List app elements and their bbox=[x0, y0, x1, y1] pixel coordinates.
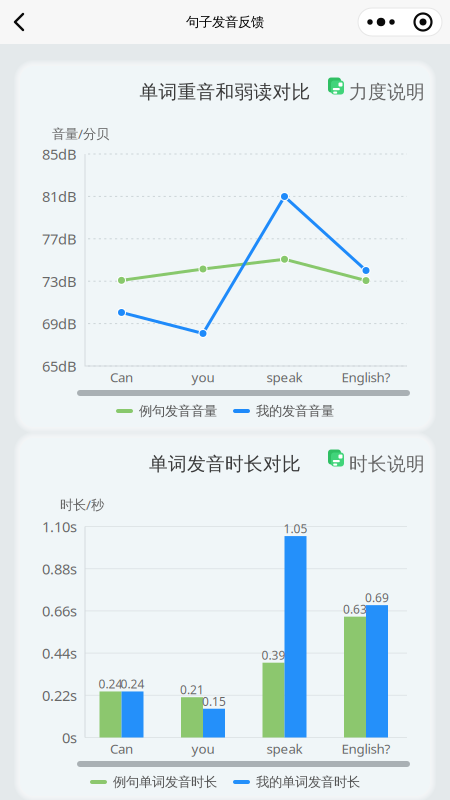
staticText: 音量/分贝 bbox=[52, 125, 109, 142]
staticText: you bbox=[191, 368, 214, 386]
staticText: 0.66s bbox=[42, 601, 77, 621]
staticText: 时长/秒 bbox=[60, 496, 104, 513]
staticText: 例句发音音量 bbox=[139, 403, 217, 419]
button[interactable]: More bbox=[358, 8, 404, 36]
staticText: speak bbox=[266, 368, 302, 386]
staticText: 0s bbox=[62, 728, 77, 747]
staticText: Can bbox=[110, 368, 133, 386]
staticText: 73dB bbox=[42, 271, 77, 291]
staticText: 0.24 bbox=[98, 676, 122, 692]
staticText: 例句单词发音时长 bbox=[113, 774, 217, 790]
staticText: 0.21 bbox=[180, 682, 204, 698]
staticText: 0.88s bbox=[42, 559, 77, 578]
staticText: 69dB bbox=[42, 314, 77, 333]
staticText: 0.24 bbox=[120, 676, 144, 692]
staticText: 单词重音和弱读对比 bbox=[139, 80, 310, 103]
staticText: 1.10s bbox=[42, 517, 77, 536]
button[interactable]: 力度说明 bbox=[328, 80, 425, 103]
staticText: 0.44s bbox=[42, 643, 77, 663]
button[interactable]: 时长说明 bbox=[328, 452, 425, 475]
button[interactable]: Back bbox=[6, 6, 38, 38]
staticText: Can bbox=[110, 740, 133, 757]
staticText: 81dB bbox=[42, 187, 77, 206]
staticText: 时长说明 bbox=[349, 452, 425, 475]
staticText: 1.05 bbox=[283, 521, 307, 536]
staticText: 0.22s bbox=[42, 686, 77, 705]
staticText: 0.63 bbox=[343, 601, 367, 617]
staticText: 85dB bbox=[42, 144, 77, 164]
staticText: English? bbox=[341, 368, 390, 386]
staticText: 77dB bbox=[42, 229, 77, 249]
staticText: English? bbox=[341, 740, 390, 757]
staticText: 单词发音时长对比 bbox=[149, 452, 301, 475]
button[interactable]: Close bbox=[404, 8, 442, 36]
staticText: speak bbox=[266, 740, 302, 757]
staticText: you bbox=[191, 740, 214, 757]
staticText: 65dB bbox=[42, 356, 77, 376]
staticText: 0.39 bbox=[261, 647, 285, 663]
staticText: 句子发音反馈 bbox=[186, 14, 264, 30]
staticText: 0.15 bbox=[202, 693, 226, 709]
staticText: 我的发音音量 bbox=[256, 403, 334, 419]
staticText: 0.69 bbox=[365, 590, 389, 606]
staticText: 力度说明 bbox=[349, 80, 425, 103]
staticText: 我的单词发音时长 bbox=[256, 774, 360, 790]
